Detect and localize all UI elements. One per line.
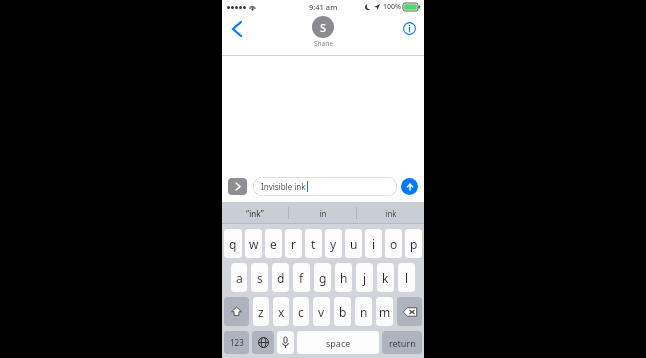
button[interactable]: e xyxy=(265,229,282,258)
button[interactable]: space xyxy=(297,331,379,354)
button[interactable]: u xyxy=(345,229,362,258)
staticText: v xyxy=(318,304,325,320)
button[interactable]: Back xyxy=(226,18,248,40)
button[interactable]: i xyxy=(365,229,382,258)
button[interactable]: Backspace xyxy=(397,297,422,326)
staticText: h xyxy=(340,270,348,286)
button[interactable]: b xyxy=(334,297,351,326)
staticText: “ink” xyxy=(246,208,264,219)
staticText: r xyxy=(291,236,296,252)
button[interactable]: Details xyxy=(399,18,419,38)
button[interactable]: a xyxy=(231,263,247,292)
button[interactable]: n xyxy=(355,297,372,326)
staticText: q xyxy=(229,236,237,252)
staticText: p xyxy=(410,236,418,252)
staticText: x xyxy=(278,304,285,320)
staticText: c xyxy=(298,304,304,320)
button[interactable]: t xyxy=(305,229,322,258)
button[interactable]: d xyxy=(272,263,289,292)
button[interactable]: “ink” xyxy=(222,202,288,224)
button[interactable]: c xyxy=(293,297,309,326)
staticText: 100% xyxy=(383,2,401,12)
button[interactable]: s xyxy=(251,263,268,292)
button[interactable]: Send xyxy=(401,178,418,195)
staticText: w xyxy=(249,236,259,252)
button[interactable]: l xyxy=(398,263,415,292)
staticText: return xyxy=(389,337,416,349)
button[interactable]: q xyxy=(224,229,242,258)
staticText: 123 xyxy=(230,337,244,348)
button[interactable]: Change keyboard xyxy=(252,331,274,354)
staticText: b xyxy=(339,304,347,320)
staticText: d xyxy=(277,270,285,286)
button[interactable]: Shift xyxy=(224,297,249,326)
staticText: Invisible ink xyxy=(261,181,306,192)
staticText: S xyxy=(320,20,327,35)
staticText: space xyxy=(326,337,351,349)
button[interactable]: y xyxy=(325,229,342,258)
button[interactable]: Dictation xyxy=(277,331,294,354)
button[interactable]: h xyxy=(335,263,352,292)
staticText: u xyxy=(350,236,358,252)
button[interactable]: w xyxy=(245,229,262,258)
button[interactable]: 123 xyxy=(224,331,249,354)
staticText: 9:41 am xyxy=(309,2,338,12)
staticText: o xyxy=(390,236,398,252)
staticText: m xyxy=(379,304,391,320)
button[interactable]: r xyxy=(285,229,302,258)
staticText: l xyxy=(405,270,409,286)
button[interactable]: ink xyxy=(357,202,424,224)
button[interactable]: z xyxy=(253,297,269,326)
button[interactable]: g xyxy=(314,263,331,292)
button[interactable]: Invisible ink xyxy=(253,177,397,196)
button[interactable]: o xyxy=(385,229,402,258)
button[interactable]: v xyxy=(313,297,330,326)
staticText: ink xyxy=(385,208,397,219)
button[interactable]: f xyxy=(293,263,310,292)
staticText: e xyxy=(270,236,277,252)
staticText: z xyxy=(258,304,264,320)
button[interactable]: j xyxy=(356,263,373,292)
staticText: g xyxy=(319,270,327,286)
button[interactable]: p xyxy=(405,229,422,258)
staticText: s xyxy=(257,270,263,286)
button[interactable]: x xyxy=(273,297,289,326)
staticText: y xyxy=(330,236,337,252)
staticText: j xyxy=(363,270,367,286)
button[interactable]: S xyxy=(312,16,334,48)
staticText: a xyxy=(236,270,243,286)
staticText: i xyxy=(372,236,376,252)
button[interactable]: m xyxy=(376,297,393,326)
staticText: k xyxy=(382,270,389,286)
button[interactable]: More apps xyxy=(228,178,247,195)
staticText: f xyxy=(299,270,304,286)
staticText: t xyxy=(311,236,316,252)
button[interactable]: return xyxy=(382,331,422,354)
button[interactable]: k xyxy=(377,263,394,292)
staticText: n xyxy=(360,304,368,320)
staticText: in xyxy=(319,208,327,219)
button[interactable]: in xyxy=(289,202,356,224)
staticText: Shane xyxy=(314,39,333,48)
